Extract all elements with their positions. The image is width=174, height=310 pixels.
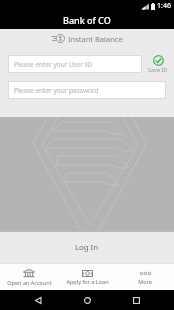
button[interactable]: Instant Balance xyxy=(0,29,174,55)
staticText: Please enter your password xyxy=(14,86,99,95)
staticText: Log In xyxy=(75,242,99,253)
button[interactable]: Save ID xyxy=(142,55,174,73)
staticText: More xyxy=(138,278,152,285)
staticText: Bank of CO xyxy=(63,14,111,26)
staticText: Apply for a Loan xyxy=(66,278,109,285)
button[interactable]: Home xyxy=(76,290,98,310)
button[interactable]: Log In xyxy=(0,232,174,260)
staticText: Save ID xyxy=(148,66,168,73)
button[interactable]: Please enter your User ID xyxy=(8,55,142,73)
button[interactable]: Please enter your password xyxy=(8,81,166,99)
button[interactable]: Recents xyxy=(125,290,147,310)
staticText: Open an Account xyxy=(7,279,52,286)
staticText: 1:46 xyxy=(157,1,171,11)
button[interactable]: Back xyxy=(27,290,49,310)
button[interactable]: Apply for a Loan xyxy=(58,264,116,290)
button[interactable]: Open an Account xyxy=(0,264,58,290)
staticText: Instant Balance xyxy=(68,34,123,44)
button[interactable]: More xyxy=(116,264,174,290)
staticText: Please enter your User ID xyxy=(14,60,92,69)
